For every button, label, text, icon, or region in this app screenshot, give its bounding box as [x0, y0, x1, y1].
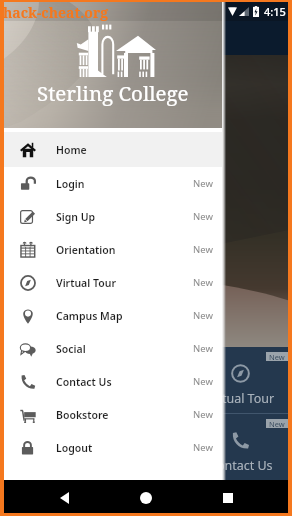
staticText: New	[193, 177, 213, 190]
staticText: New	[193, 342, 213, 355]
button[interactable]: Campus Map	[4, 299, 222, 332]
staticText: hack-cheat.org	[3, 3, 109, 22]
staticText: 4:15	[264, 4, 286, 19]
staticText: New	[193, 408, 213, 421]
button[interactable]: Back	[42, 482, 86, 513]
staticText: Logout	[56, 441, 93, 455]
staticText: New	[193, 243, 213, 256]
button[interactable]: New	[193, 414, 288, 480]
button[interactable]: Contact Us	[4, 365, 222, 398]
staticText: Virtual Tour	[206, 390, 275, 407]
staticText: Orientation	[56, 243, 116, 257]
staticText: Bookstore	[56, 408, 109, 422]
button[interactable]: Orientation	[4, 233, 222, 266]
button[interactable]: New	[4, 414, 98, 480]
staticText: New	[193, 309, 213, 322]
button[interactable]: Sign Up	[4, 200, 222, 233]
staticText: New	[193, 441, 213, 454]
staticText: Sign Up	[56, 210, 96, 224]
button[interactable]: Bookstore	[4, 398, 222, 431]
staticText: Virtual Tour	[56, 276, 116, 290]
button[interactable]: Virtual Tour	[4, 266, 222, 299]
staticText: Social	[56, 342, 86, 356]
button[interactable]: Home	[4, 132, 222, 167]
staticText: Contact Us	[56, 375, 112, 389]
staticText: Campus Map	[56, 309, 123, 323]
button[interactable]: Recent apps	[206, 482, 250, 513]
button[interactable]: Home	[124, 482, 168, 513]
staticText: Contact Us	[209, 457, 273, 474]
staticText: Login	[56, 177, 85, 191]
button[interactable]: New	[98, 414, 193, 480]
staticText: New	[193, 210, 213, 223]
button[interactable]: Login	[4, 167, 222, 200]
button[interactable]: New	[4, 347, 98, 413]
staticText: New	[193, 276, 213, 289]
button[interactable]: New	[193, 347, 288, 413]
staticText: Home	[56, 143, 87, 157]
button[interactable]: Social	[4, 332, 222, 365]
button[interactable]: Logout	[4, 431, 222, 464]
staticText: New	[79, 352, 95, 361]
staticText: New	[193, 375, 213, 388]
staticText: Sterling College	[37, 79, 189, 107]
staticText: New	[269, 352, 285, 361]
button[interactable]: New	[98, 347, 193, 413]
staticText: New	[269, 419, 285, 428]
